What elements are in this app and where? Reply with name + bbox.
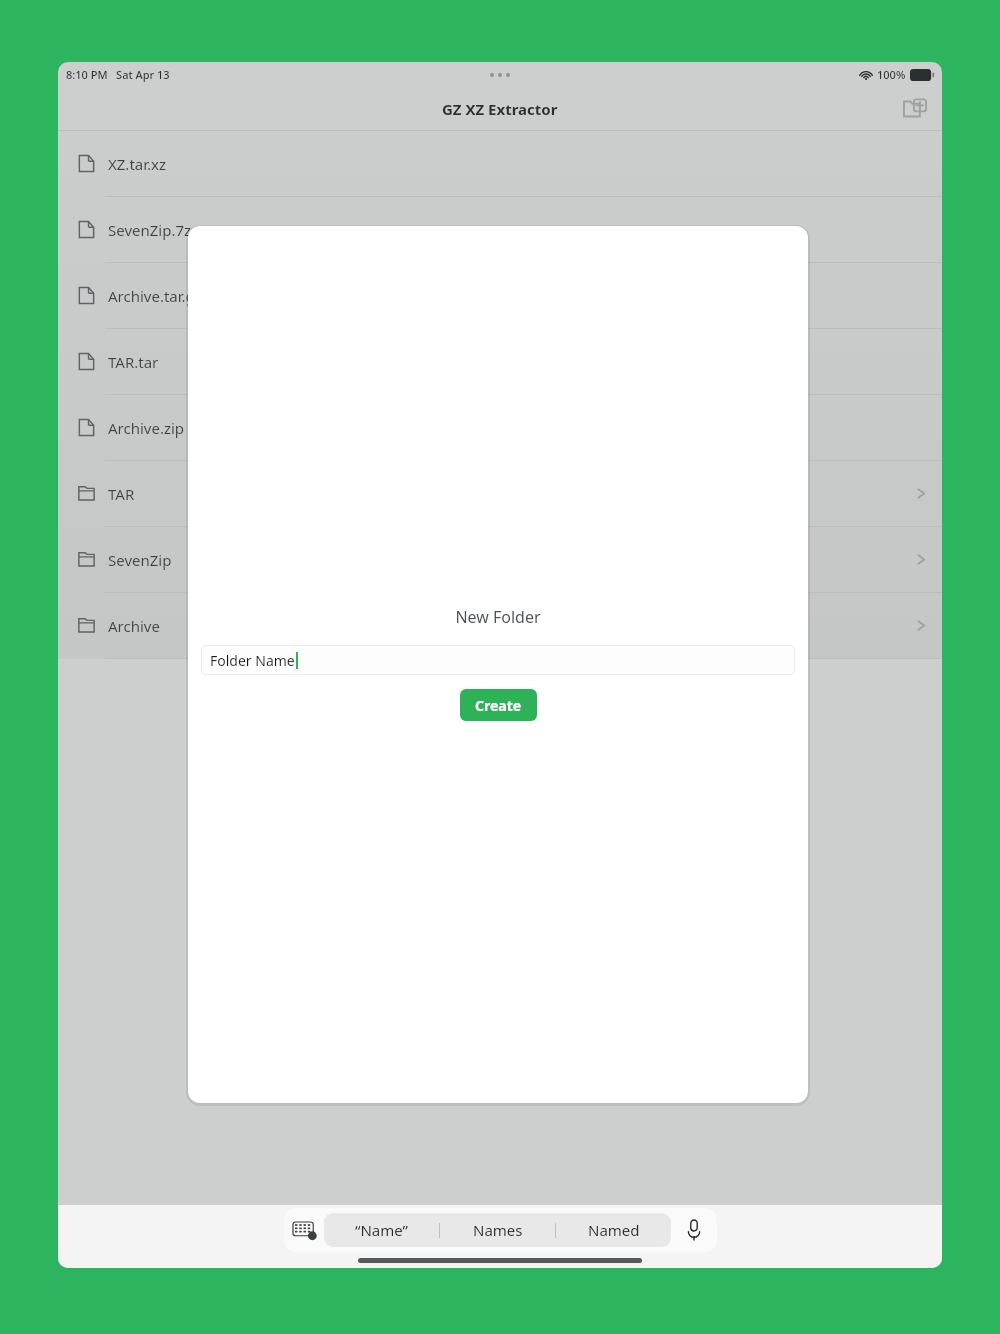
button[interactable]: Keyboard settings [284, 1208, 324, 1252]
staticText: Create [475, 696, 522, 715]
staticText: Archive [108, 616, 160, 636]
button[interactable]: Archive [58, 593, 942, 659]
button[interactable]: New Folder [898, 92, 932, 126]
button[interactable]: Archive.zip [58, 395, 942, 461]
button[interactable]: XZ.tar.xz [58, 131, 942, 197]
button[interactable]: Create [460, 689, 537, 721]
button[interactable]: Archive.tar.gz [58, 263, 942, 329]
staticText: 8:10 PM Sat Apr 13 [66, 67, 170, 82]
staticText: XZ.tar.xz [108, 154, 167, 174]
button[interactable]: SevenZip [58, 527, 942, 593]
staticText: TAR [108, 484, 135, 504]
staticText: New Folder [455, 606, 541, 628]
button[interactable]: Dictate [671, 1208, 717, 1252]
staticText: 100% [877, 67, 906, 82]
staticText: Archive.zip [108, 418, 185, 438]
staticText: Named [588, 1220, 640, 1240]
button[interactable]: “Name” [324, 1213, 439, 1247]
button[interactable]: SevenZip.7z [58, 197, 942, 263]
staticText: Folder Name [210, 651, 295, 670]
button[interactable]: Names [440, 1213, 555, 1247]
staticText: TAR.tar [108, 352, 159, 372]
button[interactable]: TAR [58, 461, 942, 527]
button[interactable]: Named [556, 1213, 671, 1247]
staticText: Names [473, 1220, 523, 1240]
staticText: SevenZip.7z [108, 220, 192, 240]
staticText: GZ XZ Extractor [442, 99, 558, 119]
staticText: “Name” [355, 1220, 408, 1240]
button[interactable]: TAR.tar [58, 329, 942, 395]
button[interactable]: Folder Name [201, 645, 795, 675]
staticText: SevenZip [108, 550, 172, 570]
staticText: Archive.tar.gz [108, 286, 202, 306]
